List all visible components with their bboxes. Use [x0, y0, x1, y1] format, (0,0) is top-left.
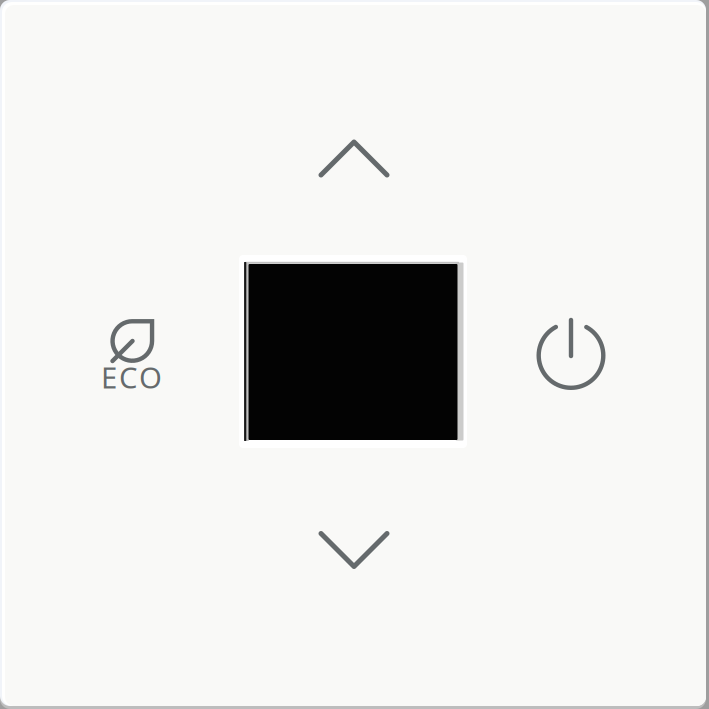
button[interactable]: Decrease temperature — [291, 503, 417, 596]
button[interactable]: ECO — [96, 301, 170, 403]
staticText: ECO — [101, 358, 162, 397]
button[interactable]: Power — [531, 315, 615, 399]
button[interactable]: Increase temperature — [291, 112, 417, 205]
